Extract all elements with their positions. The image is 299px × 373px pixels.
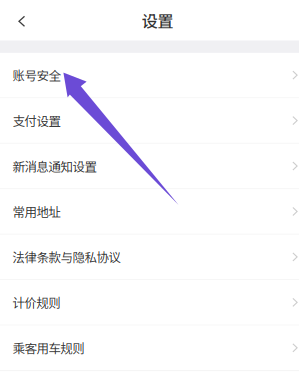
staticText: 支付设置 <box>13 111 61 130</box>
button[interactable]: 支付设置 <box>0 98 299 144</box>
button[interactable]: 乘客用车规则 <box>0 326 299 371</box>
staticText: 常用地址 <box>13 202 61 220</box>
staticText: 设置 <box>141 9 173 32</box>
button[interactable]: 返回 <box>0 0 44 40</box>
button[interactable]: 计价规则 <box>0 280 299 326</box>
button[interactable]: 常用地址 <box>0 189 299 235</box>
button[interactable]: 法律条款与隐私协议 <box>0 235 299 280</box>
button[interactable]: 账号安全 <box>0 53 299 98</box>
staticText: 账号安全 <box>13 66 61 84</box>
staticText: 新消息通知设置 <box>13 157 97 175</box>
button[interactable]: 新消息通知设置 <box>0 144 299 189</box>
staticText: 计价规则 <box>13 293 61 311</box>
staticText: 法律条款与隐私协议 <box>13 248 121 266</box>
staticText: 乘客用车规则 <box>13 339 85 357</box>
